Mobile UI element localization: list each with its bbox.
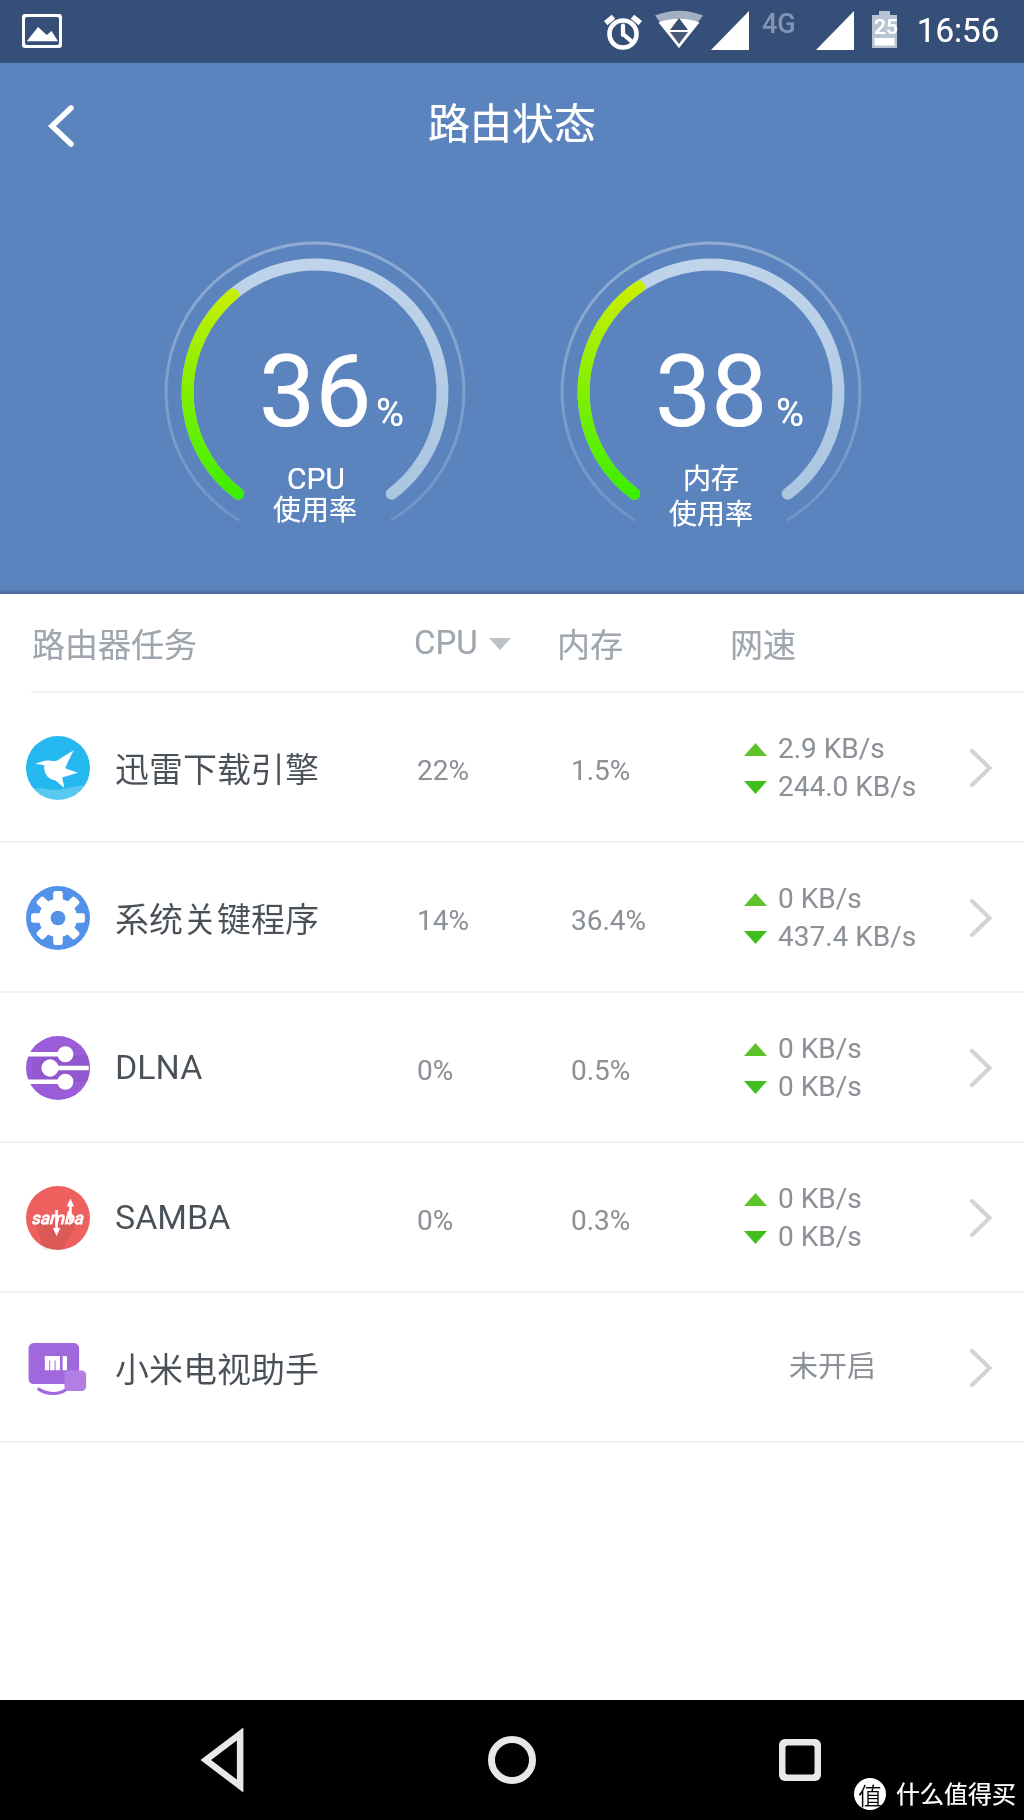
- staticText: 1.5%: [571, 754, 631, 787]
- staticText: 0 KB/s: [778, 1070, 862, 1103]
- button[interactable]: samba: [0, 1143, 1024, 1293]
- staticText: 437.4 KB/s: [778, 920, 917, 953]
- staticText: 使用率: [273, 488, 358, 529]
- staticText: 未开启: [789, 1343, 877, 1385]
- button[interactable]: 小米电视助手: [0, 1293, 1024, 1443]
- staticText: 25: [874, 15, 898, 40]
- button[interactable]: Back: [164, 1700, 284, 1820]
- staticText: 内存: [683, 457, 740, 498]
- button[interactable]: Recents: [740, 1700, 860, 1820]
- button[interactable]: 系统关键程序: [0, 843, 1024, 993]
- staticText: 路由器任务: [32, 619, 197, 667]
- staticText: 迅雷下载引擎: [115, 743, 319, 792]
- staticText: 内存: [557, 619, 623, 667]
- staticText: %: [776, 391, 804, 436]
- staticText: 0%: [417, 1054, 454, 1087]
- staticText: 系统关键程序: [115, 893, 319, 942]
- button[interactable]: Home: [452, 1700, 572, 1820]
- staticText: 4G: [762, 8, 796, 40]
- staticText: 22%: [417, 754, 469, 787]
- staticText: CPU: [414, 623, 478, 662]
- staticText: 38: [655, 333, 768, 450]
- staticText: 0.3%: [571, 1204, 631, 1237]
- staticText: 值: [858, 1778, 882, 1809]
- button[interactable]: 迅雷下载引擎: [0, 693, 1024, 843]
- staticText: 0 KB/s: [778, 1032, 862, 1065]
- button[interactable]: DLNA: [0, 993, 1024, 1143]
- staticText: CPU: [287, 461, 345, 496]
- staticText: 0 KB/s: [778, 1182, 862, 1215]
- staticText: 2.9 KB/s: [778, 732, 885, 765]
- staticText: 路由状态: [428, 90, 597, 151]
- staticText: 0 KB/s: [778, 882, 862, 915]
- staticText: DLNA: [115, 1047, 203, 1087]
- staticText: 36: [259, 333, 372, 450]
- staticText: 36.4%: [571, 904, 647, 937]
- staticText: 244.0 KB/s: [778, 770, 917, 803]
- staticText: 0 KB/s: [778, 1220, 862, 1253]
- staticText: 网速: [730, 619, 796, 667]
- staticText: 0%: [417, 1204, 454, 1237]
- staticText: %: [376, 391, 404, 436]
- staticText: 使用率: [669, 492, 754, 533]
- button[interactable]: Back: [12, 75, 108, 171]
- staticText: 16:56: [917, 11, 1000, 50]
- staticText: 小米电视助手: [115, 1343, 319, 1392]
- staticText: SAMBA: [115, 1197, 231, 1237]
- staticText: 什么值得买: [896, 1775, 1016, 1810]
- staticText: 0.5%: [571, 1054, 631, 1087]
- staticText: 14%: [417, 904, 469, 937]
- staticText: samba: [31, 1208, 83, 1228]
